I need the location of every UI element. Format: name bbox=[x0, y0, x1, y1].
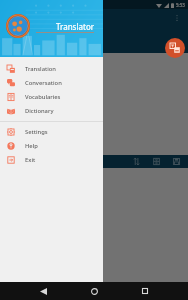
staticText: Translator bbox=[56, 21, 95, 32]
button[interactable]: Dictionary bbox=[0, 104, 103, 118]
staticText: 5:53 bbox=[176, 2, 185, 8]
button[interactable]: Back bbox=[35, 283, 51, 299]
staticText: Vocabularies bbox=[25, 93, 61, 101]
button[interactable]: Copy bbox=[151, 156, 162, 167]
button[interactable]: Swap languages bbox=[131, 156, 142, 167]
staticText: Exit bbox=[25, 156, 36, 164]
button[interactable]: Translate bbox=[165, 38, 185, 58]
button[interactable]: Save bbox=[171, 156, 182, 167]
staticText: Conversation bbox=[25, 79, 62, 87]
staticText: Help bbox=[25, 142, 38, 150]
staticText: Dictionary bbox=[25, 107, 54, 115]
button[interactable]: More options bbox=[170, 11, 184, 25]
button[interactable]: Translator bbox=[0, 0, 103, 57]
button[interactable]: Settings bbox=[0, 125, 103, 139]
staticText: Translation bbox=[25, 65, 56, 73]
button[interactable]: Recents bbox=[137, 283, 153, 299]
button[interactable]: Voice input bbox=[85, 26, 103, 44]
staticText: Settings bbox=[25, 128, 48, 136]
button[interactable]: Exit bbox=[0, 153, 103, 167]
button[interactable]: Translation bbox=[0, 62, 103, 76]
button[interactable]: Help bbox=[0, 139, 103, 153]
button[interactable]: Conversation bbox=[0, 76, 103, 90]
button[interactable]: Home bbox=[86, 283, 102, 299]
button[interactable]: Vocabularies bbox=[0, 90, 103, 104]
